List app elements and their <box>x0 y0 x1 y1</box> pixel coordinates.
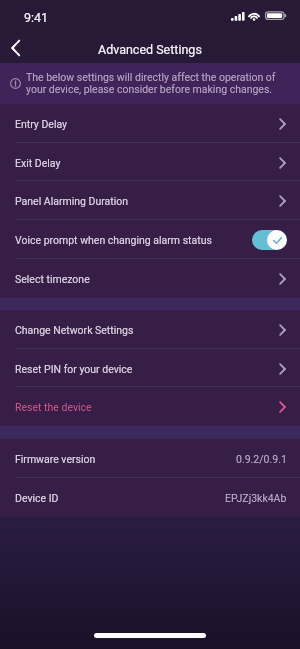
button[interactable]: Exit Delay <box>0 143 300 182</box>
staticText: Reset the device <box>15 401 92 413</box>
staticText: Select timezone <box>15 273 90 285</box>
button[interactable]: Change Network Settings <box>0 310 300 349</box>
button[interactable]: Firmware version <box>0 439 300 478</box>
button[interactable]: Device ID <box>0 478 300 517</box>
button[interactable]: Panel Alarming Duration <box>0 181 300 220</box>
staticText: Firmware version <box>15 453 96 465</box>
staticText: The below settings will directly affect … <box>26 71 288 96</box>
staticText: Voice prompt when changing alarm status <box>15 234 212 246</box>
staticText: Device ID <box>15 492 59 504</box>
staticText: Advanced Settings <box>98 42 202 57</box>
button[interactable]: Entry Delay <box>0 104 300 143</box>
button[interactable]: Back <box>0 32 30 63</box>
button[interactable]: Reset PIN for your device <box>0 349 300 388</box>
staticText: 0.9.2/0.9.1 <box>236 453 287 465</box>
button[interactable]: Select timezone <box>0 259 300 298</box>
button[interactable]: Reset the device <box>0 387 300 426</box>
staticText: 9:41 <box>24 10 49 25</box>
button[interactable] <box>252 230 287 250</box>
staticText: Reset PIN for your device <box>15 363 133 375</box>
staticText: Entry Delay <box>15 118 68 130</box>
button[interactable]: Voice prompt when changing alarm status <box>0 220 300 259</box>
staticText: Change Network Settings <box>15 324 134 336</box>
staticText: EPJZj3kk4Ab <box>225 492 287 504</box>
staticText: Panel Alarming Duration <box>15 195 129 207</box>
staticText: Exit Delay <box>15 157 61 169</box>
